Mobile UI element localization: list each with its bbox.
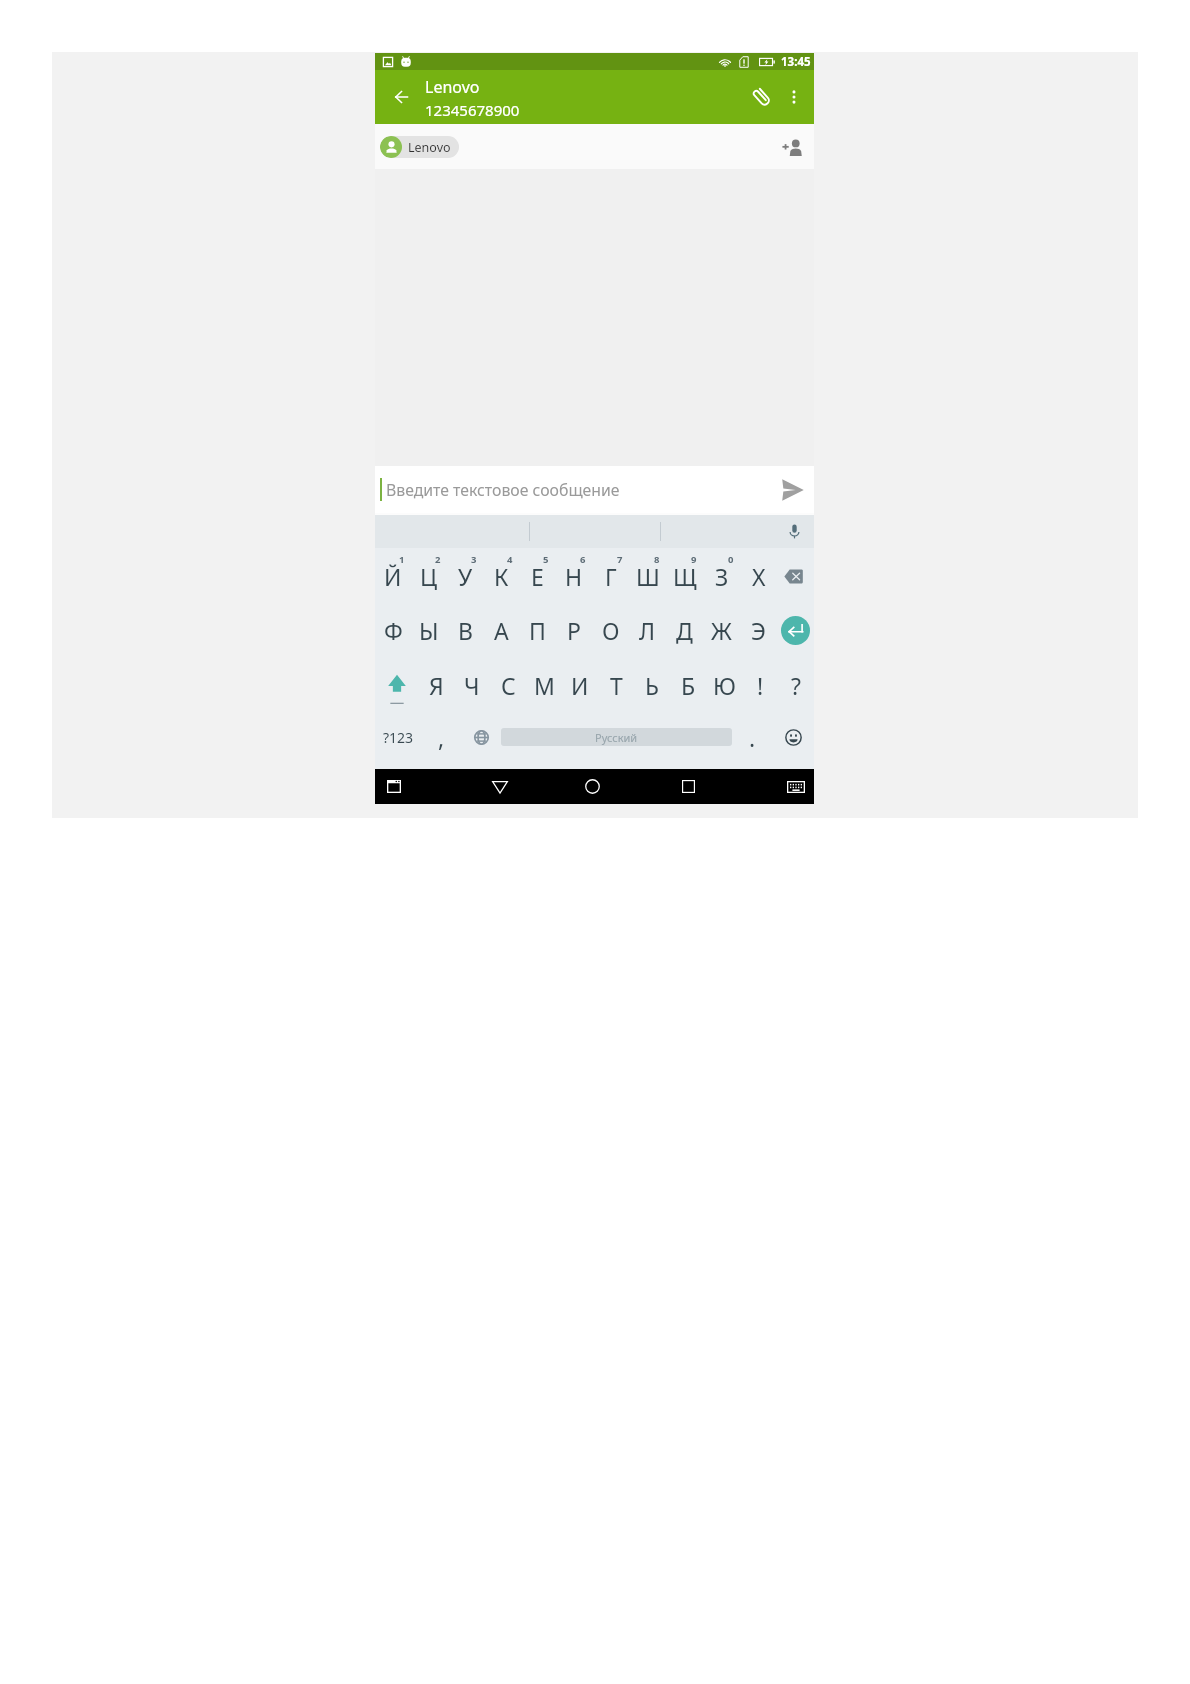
button[interactable]: 5: [519, 548, 555, 603]
staticText: К: [494, 561, 509, 592]
button[interactable]: Voice input: [774, 515, 814, 548]
button[interactable]: .: [732, 709, 772, 765]
button[interactable]: Л: [629, 603, 666, 658]
button[interactable]: Ю: [706, 658, 742, 713]
button[interactable]: Lenovo: [380, 136, 459, 158]
button[interactable]: Recent apps: [377, 769, 410, 804]
button[interactable]: И: [562, 658, 598, 713]
staticText: М: [534, 670, 555, 701]
button[interactable]: Ч: [454, 658, 490, 713]
button[interactable]: Т: [598, 658, 634, 713]
button[interactable]: В: [447, 603, 483, 658]
button[interactable]: Enter: [777, 603, 814, 658]
staticText: У: [458, 561, 473, 592]
staticText: Ж: [711, 615, 732, 646]
button[interactable]: Х: [740, 548, 777, 603]
staticText: ?: [791, 670, 801, 701]
button[interactable]: Home: [576, 769, 609, 804]
staticText: Я: [429, 670, 444, 701]
staticText: Л: [639, 615, 656, 646]
staticText: Ш: [636, 561, 660, 592]
staticText: 4: [507, 553, 513, 566]
button[interactable]: Русский: [501, 728, 732, 746]
button[interactable]: М: [526, 658, 562, 713]
staticText: Г: [605, 561, 617, 592]
staticText: П: [529, 615, 546, 646]
button[interactable]: Shift: [375, 658, 419, 713]
button[interactable]: 6: [555, 548, 592, 603]
button[interactable]: Back: [383, 79, 419, 115]
staticText: Х: [752, 561, 766, 592]
button[interactable]: ?123: [375, 709, 421, 765]
button[interactable]: 3: [447, 548, 483, 603]
button[interactable]: Back: [483, 769, 516, 804]
button[interactable]: 7: [592, 548, 629, 603]
staticText: Е: [531, 561, 544, 592]
staticText: Т: [610, 670, 623, 701]
staticText: 2: [435, 553, 441, 566]
staticText: !: [757, 670, 764, 701]
button[interactable]: 4: [483, 548, 519, 603]
staticText: 8: [654, 553, 660, 566]
button[interactable]: ?: [778, 658, 814, 713]
button[interactable]: Я: [419, 658, 454, 713]
button[interactable]: С: [490, 658, 526, 713]
button[interactable]: Ы: [411, 603, 447, 658]
staticText: С: [501, 670, 516, 701]
staticText: 13:45: [781, 54, 811, 70]
staticText: Lenovo: [425, 76, 480, 98]
button[interactable]: 9: [666, 548, 703, 603]
button[interactable]: Ж: [703, 603, 740, 658]
button[interactable]: Ф: [375, 603, 411, 658]
button[interactable]: П: [519, 603, 555, 658]
staticText: Введите текстовое сообщение: [386, 479, 620, 501]
staticText: ?123: [383, 728, 414, 747]
button[interactable]: Д: [666, 603, 703, 658]
staticText: 1: [399, 553, 405, 566]
button[interactable]: Ь: [634, 658, 670, 713]
button[interactable]: Attach: [743, 78, 781, 116]
button[interactable]: 2: [411, 548, 447, 603]
button[interactable]: О: [592, 603, 629, 658]
button[interactable]: Э: [740, 603, 777, 658]
button[interactable]: Emoji: [772, 709, 814, 765]
button[interactable]: Overview: [672, 769, 705, 804]
button[interactable]: Р: [555, 603, 592, 658]
button[interactable]: Send: [771, 468, 815, 512]
staticText: Н: [565, 561, 583, 592]
staticText: Lenovo: [408, 139, 451, 156]
staticText: 5: [543, 553, 549, 566]
staticText: З: [715, 561, 729, 592]
button[interactable]: 0: [703, 548, 740, 603]
staticText: Ц: [420, 561, 438, 592]
button[interactable]: ,: [421, 709, 461, 765]
button[interactable]: 8: [629, 548, 666, 603]
staticText: Б: [681, 670, 696, 701]
button[interactable]: Add recipient: [776, 131, 808, 163]
button[interactable]: !: [742, 658, 778, 713]
staticText: И: [571, 670, 589, 701]
staticText: Ф: [384, 615, 403, 646]
button[interactable]: Keyboard: [779, 769, 812, 804]
button[interactable]: 1: [375, 548, 411, 603]
staticText: Ч: [464, 670, 480, 701]
staticText: Ы: [419, 615, 439, 646]
staticText: Й: [384, 561, 402, 592]
staticText: 6: [580, 553, 586, 566]
button[interactable]: More options: [778, 81, 810, 113]
button[interactable]: А: [483, 603, 519, 658]
staticText: Р: [567, 615, 581, 646]
staticText: 12345678900: [425, 100, 520, 120]
button[interactable]: Б: [670, 658, 706, 713]
button[interactable]: Change language: [461, 709, 501, 765]
staticText: 9: [691, 553, 697, 566]
staticText: Русский: [595, 730, 638, 745]
staticText: А: [494, 615, 509, 646]
staticText: Ю: [713, 670, 736, 701]
staticText: 0: [728, 553, 734, 566]
button[interactable]: Backspace: [777, 548, 814, 603]
staticText: .: [749, 722, 756, 753]
